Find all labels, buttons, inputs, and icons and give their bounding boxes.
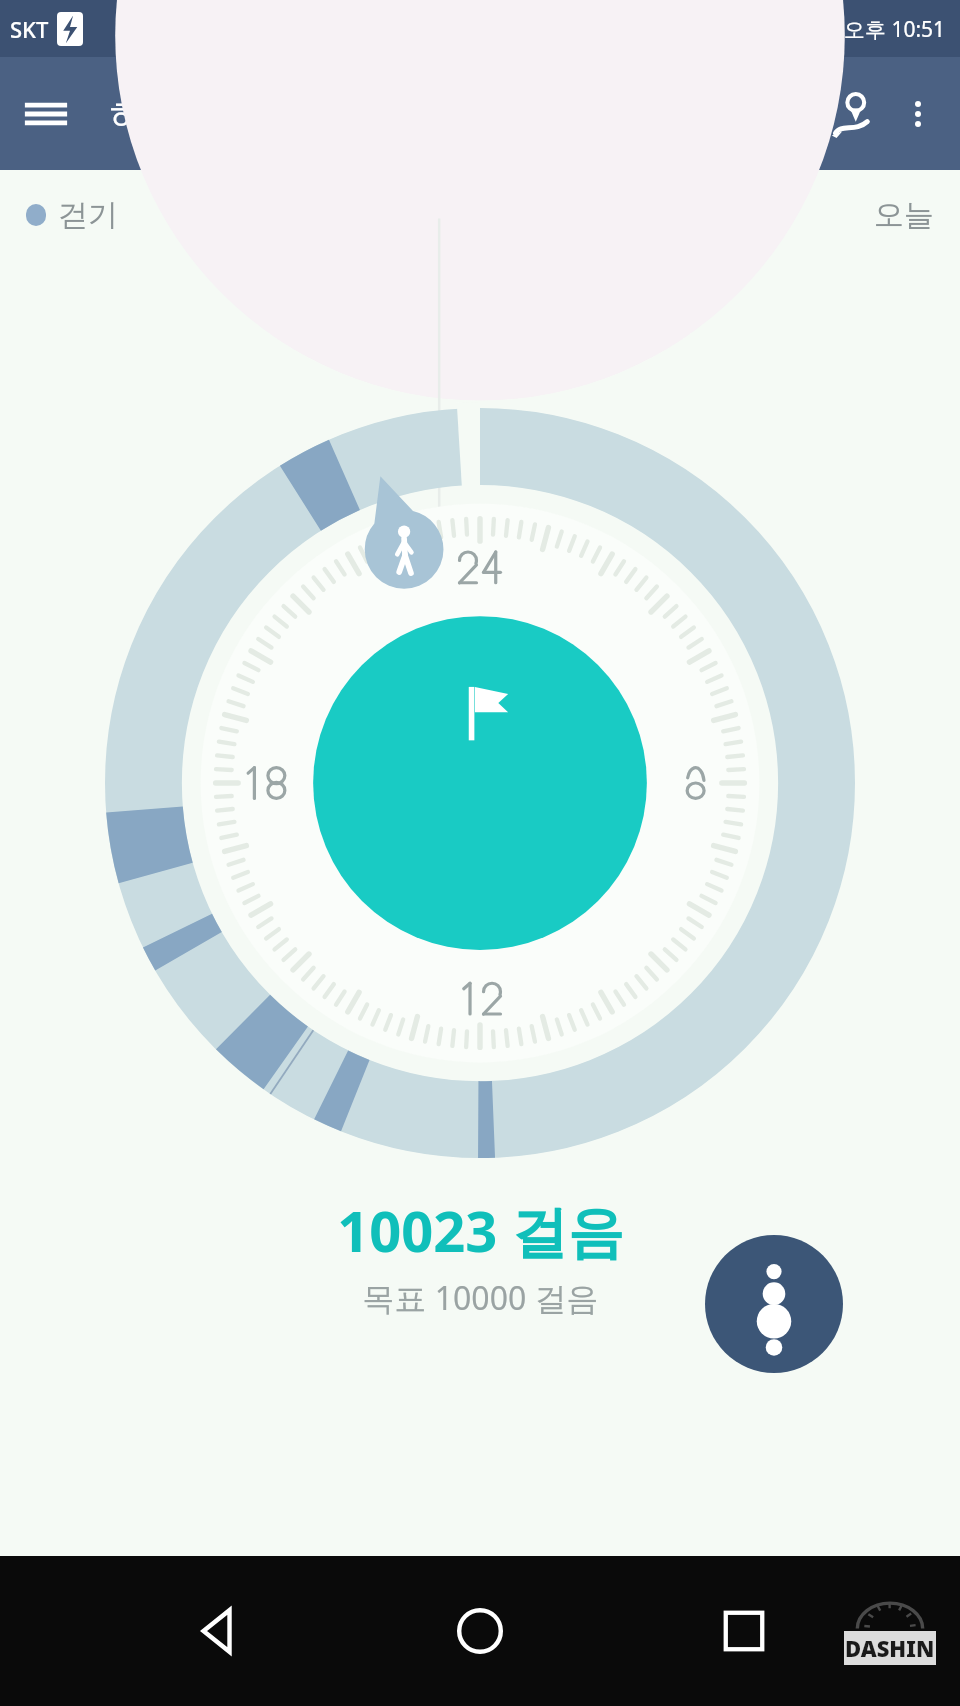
button[interactable]: Route [814, 78, 886, 150]
button[interactable]: 걷기 [26, 196, 118, 234]
staticText: 목표 10000 걸음 [362, 1276, 599, 1320]
staticText: DASHIN [845, 1633, 935, 1663]
staticText: 하루 건강 노트 [110, 91, 332, 137]
button[interactable]: Home [432, 1583, 528, 1679]
staticText: 걷기 [58, 196, 118, 234]
button[interactable]: More options [886, 82, 950, 146]
staticText: 오후 10:51 [844, 15, 946, 44]
button[interactable]: 오늘 [874, 196, 934, 234]
button[interactable]: Recents [696, 1583, 792, 1679]
staticText: 10023 걸음 [337, 1192, 624, 1268]
button[interactable]: Back [168, 1583, 264, 1679]
button[interactable]: More actions [705, 1235, 843, 1373]
button[interactable]: Menu [14, 82, 78, 146]
staticText: SKT [10, 14, 49, 44]
